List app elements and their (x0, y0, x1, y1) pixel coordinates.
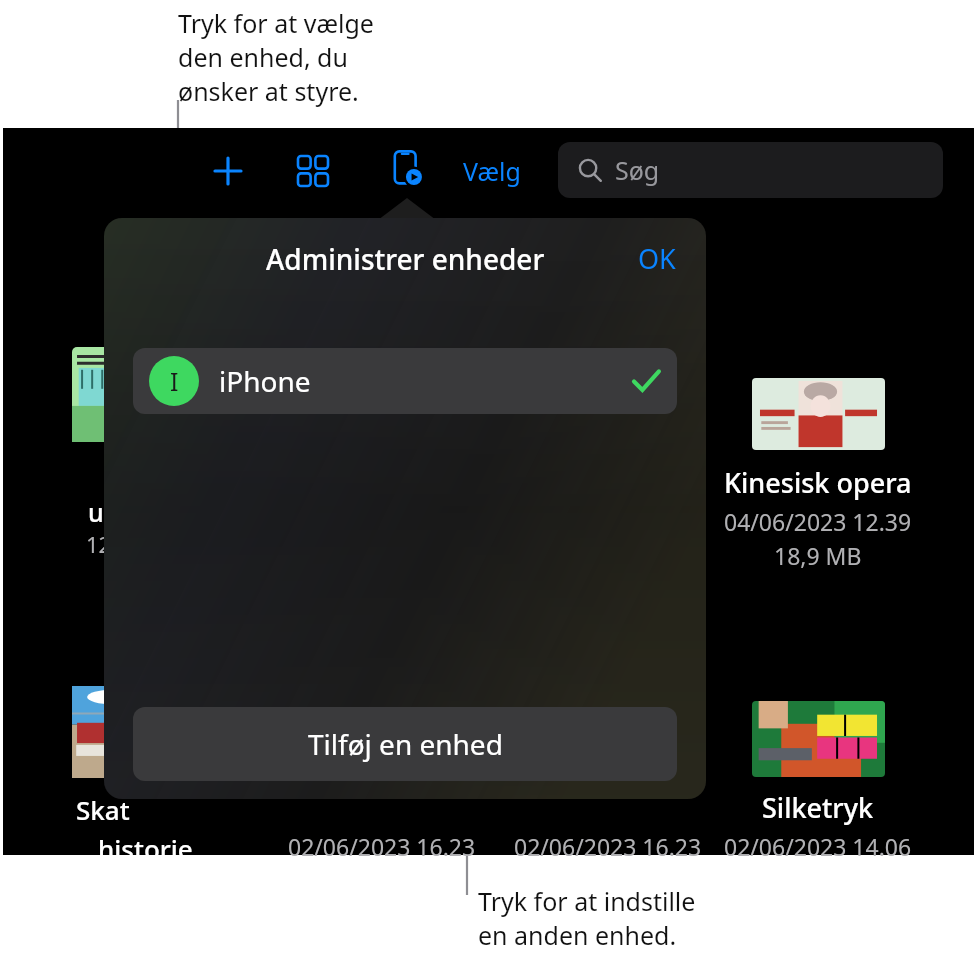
staticText: Tryk for at vælge (178, 6, 374, 40)
staticText: 18,9 MB (774, 540, 862, 571)
button[interactable]: OK (638, 240, 676, 277)
staticText: Tryk for at indstille (478, 884, 696, 918)
button[interactable]: I (133, 348, 677, 414)
button[interactable]: Tilføj (199, 142, 257, 200)
button[interactable]: Administrer enheder (381, 140, 439, 198)
staticText: historie (98, 831, 193, 866)
staticText: 02/06/2023 14.06 (724, 831, 912, 862)
staticText: Silketryk (762, 789, 874, 826)
staticText: 02/06/2023 16.23 (288, 831, 476, 862)
staticText: I (170, 364, 179, 398)
button[interactable]: Kinesisk opera (703, 378, 933, 571)
staticText: Søg (615, 153, 660, 187)
staticText: den enhed, du (178, 40, 348, 74)
staticText: Administrer enheder (266, 240, 545, 278)
button[interactable]: Visning (284, 142, 342, 200)
button[interactable]: Silketryk (703, 701, 933, 862)
staticText: Skat (76, 792, 130, 827)
staticText: Vælg (463, 154, 521, 188)
button[interactable]: Tilføj en enhed (133, 707, 677, 781)
staticText: ønsker at styre. (178, 74, 359, 108)
staticText: Kinesisk opera (724, 464, 912, 501)
staticText: Tilføj en enhed (308, 725, 503, 763)
staticText: 04/06/2023 12.39 (724, 506, 912, 537)
button[interactable]: Vælg (463, 146, 521, 196)
staticText: iPhone (219, 362, 311, 400)
staticText: en anden enhed. (478, 918, 677, 952)
staticText: ur (88, 495, 115, 529)
button[interactable]: Søg (558, 142, 943, 198)
staticText: 12/0 (86, 529, 132, 559)
staticText: 02/06/2023 16.23 (514, 831, 702, 862)
staticText: OK (638, 240, 676, 277)
